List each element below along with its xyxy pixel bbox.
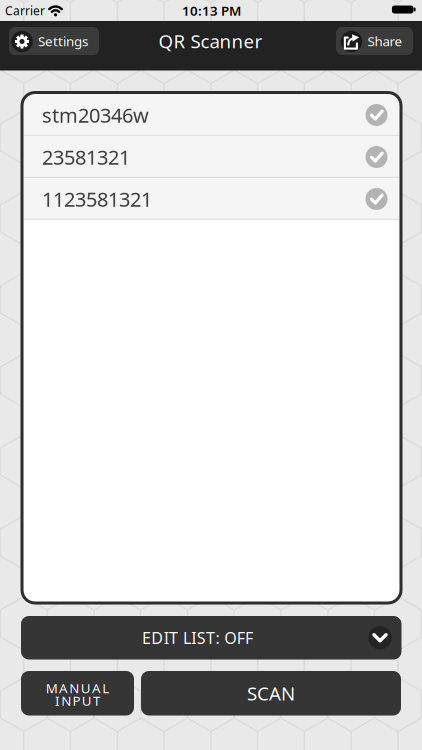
button[interactable]: MANUAL	[21, 671, 134, 715]
staticText: QR Scanner	[158, 29, 262, 53]
staticText: EDIT LIST: OFF	[142, 627, 253, 648]
staticText: Carrier	[5, 2, 45, 18]
button[interactable]: stm20346w	[23, 94, 399, 136]
staticText: Share	[367, 32, 402, 50]
staticText: stm20346w	[42, 102, 149, 128]
button[interactable]: EDIT LIST: OFF	[21, 616, 401, 659]
button[interactable]: SCAN	[141, 671, 401, 715]
staticText: 10:13 PM	[182, 2, 241, 19]
staticText: INPUT	[55, 692, 100, 709]
staticText: Settings	[38, 32, 88, 50]
button[interactable]: 1123581321	[23, 178, 399, 220]
staticText: 23581321	[42, 144, 130, 170]
staticText: SCAN	[247, 681, 295, 706]
button[interactable]: 23581321	[23, 136, 399, 178]
staticText: 1123581321	[42, 186, 152, 212]
button[interactable]: Share	[336, 27, 413, 55]
staticText: MANUAL	[46, 679, 109, 697]
button[interactable]: Settings	[9, 27, 99, 55]
